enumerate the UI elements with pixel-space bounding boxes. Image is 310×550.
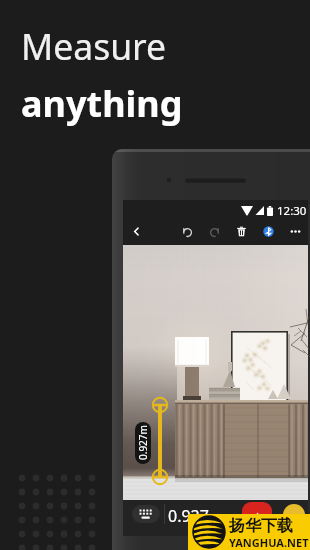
button[interactable]: Measure mode <box>283 504 305 526</box>
button[interactable]: Undo <box>177 221 198 242</box>
staticText: anything <box>21 79 183 128</box>
button[interactable]: Redo <box>204 221 225 242</box>
button[interactable]: More options <box>285 221 306 242</box>
button[interactable]: Delete <box>231 221 252 242</box>
staticText: 0.927m <box>136 425 150 460</box>
button[interactable]: Back <box>126 221 147 242</box>
staticText: Measure <box>21 22 167 70</box>
button[interactable]: Keypad <box>132 505 160 523</box>
staticText: YANGHUA.NET <box>229 535 309 550</box>
staticText: 12:30 <box>277 203 307 219</box>
staticText: 扬华下载 <box>229 516 293 536</box>
staticText: 0.927 <box>168 505 209 527</box>
button[interactable]: Bluetooth <box>258 221 279 242</box>
button[interactable]: Add measurement <box>242 502 272 532</box>
